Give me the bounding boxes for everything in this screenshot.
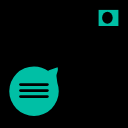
button[interactable]: Messages [0, 0, 128, 128]
